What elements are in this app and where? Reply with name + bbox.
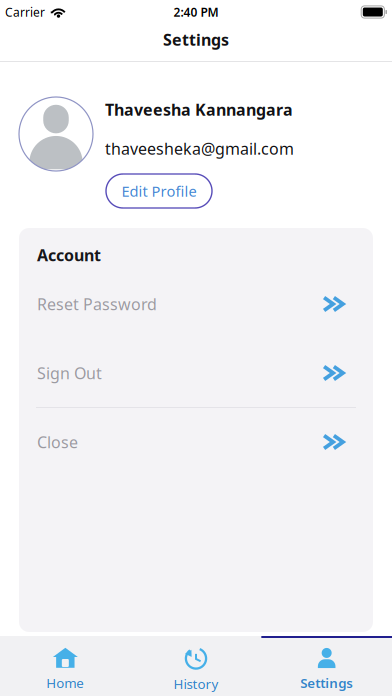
button[interactable]: Reset Password: [19, 270, 373, 338]
staticText: Reset Password: [37, 293, 157, 315]
staticText: Edit Profile: [121, 181, 196, 201]
staticText: Carrier: [5, 4, 45, 20]
staticText: Sign Out: [37, 362, 102, 384]
staticText: Home: [46, 674, 84, 692]
button[interactable]: Home: [0, 636, 131, 696]
staticText: Thaveesha Kannangara: [105, 99, 293, 120]
button[interactable]: Close: [19, 408, 373, 476]
button[interactable]: Sign Out: [19, 339, 373, 407]
staticText: History: [173, 675, 218, 693]
staticText: Settings: [163, 29, 229, 50]
button[interactable]: Edit Profile: [106, 174, 212, 208]
staticText: Settings: [300, 674, 353, 692]
staticText: Close: [37, 431, 78, 453]
staticText: thaveesheka@gmail.com: [105, 138, 294, 159]
staticText: 2:40 PM: [173, 4, 218, 20]
button[interactable]: Settings: [261, 636, 392, 696]
button[interactable]: History: [131, 636, 261, 696]
staticText: Account: [37, 244, 101, 266]
